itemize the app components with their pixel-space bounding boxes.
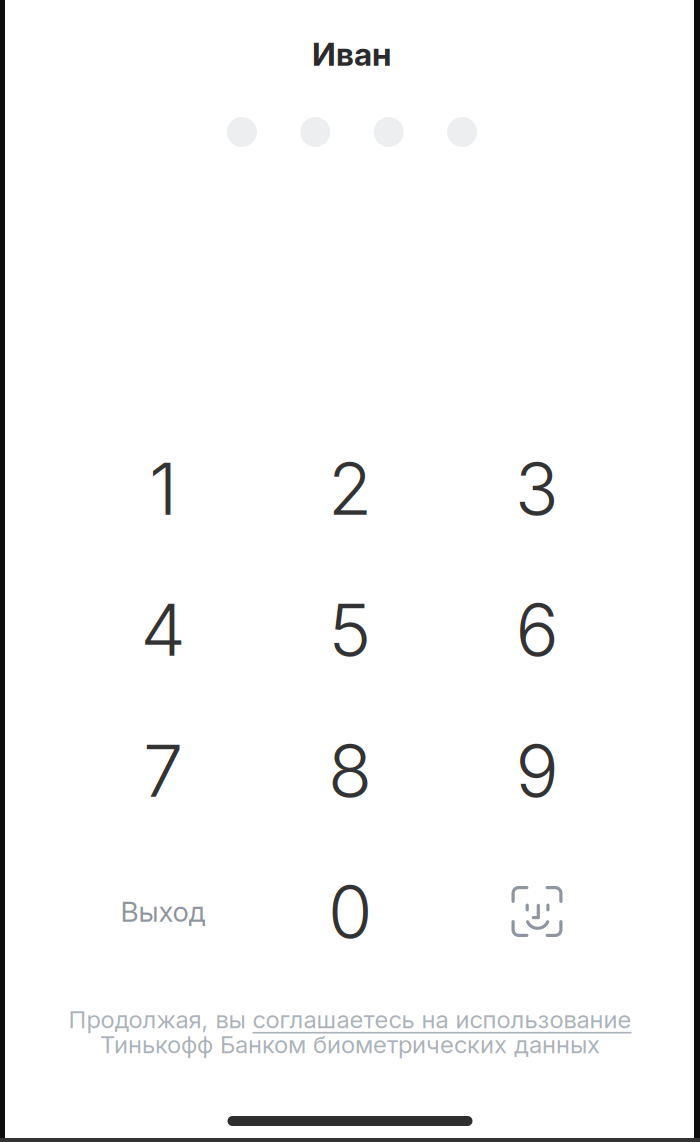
- staticText: Тинькофф Банком биометрических данных: [100, 1030, 600, 1059]
- staticText: 3: [515, 445, 559, 532]
- staticText: 1: [149, 445, 177, 532]
- staticText: 8: [328, 727, 372, 814]
- staticText: 4: [140, 586, 185, 673]
- staticText: Выход: [120, 895, 205, 928]
- button[interactable]: Войти по Face ID: [443, 841, 630, 982]
- staticText: 6: [515, 586, 558, 673]
- button[interactable]: 7: [69, 700, 256, 841]
- staticText: 2: [328, 445, 372, 532]
- button[interactable]: 8: [256, 700, 443, 841]
- button[interactable]: 9: [443, 700, 630, 841]
- staticText: 7: [143, 727, 183, 814]
- button[interactable]: 4: [69, 559, 256, 700]
- button[interactable]: Выход: [69, 841, 256, 982]
- button[interactable]: 2: [256, 418, 443, 559]
- button[interactable]: Продолжая, вы соглашаетесь на использова…: [68, 1005, 631, 1059]
- staticText: Иван: [312, 35, 391, 73]
- staticText: 0: [328, 868, 372, 955]
- button[interactable]: 0: [256, 841, 443, 982]
- staticText: 9: [515, 727, 558, 814]
- staticText: Продолжая, вы соглашаетесь на использова…: [68, 1005, 631, 1034]
- staticText: 5: [328, 586, 371, 673]
- button[interactable]: 5: [256, 559, 443, 700]
- button[interactable]: 6: [443, 559, 630, 700]
- button[interactable]: 1: [69, 418, 256, 559]
- button[interactable]: 3: [443, 418, 630, 559]
